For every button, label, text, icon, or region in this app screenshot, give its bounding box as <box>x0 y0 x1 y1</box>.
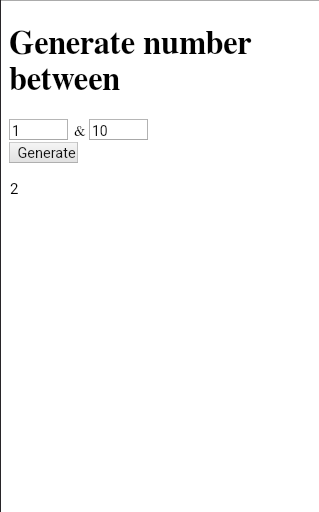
staticText: & <box>74 124 86 139</box>
button[interactable]: Lower bound <box>9 119 68 140</box>
button[interactable]: Upper bound <box>89 119 148 140</box>
staticText: 10 <box>92 123 108 139</box>
staticText: 1 <box>12 123 20 139</box>
staticText: 2 <box>10 180 19 198</box>
staticText: Generate <box>17 145 76 162</box>
staticText: between <box>9 64 121 97</box>
staticText: Generate number <box>9 28 252 61</box>
button[interactable]: Generate <box>9 142 78 163</box>
